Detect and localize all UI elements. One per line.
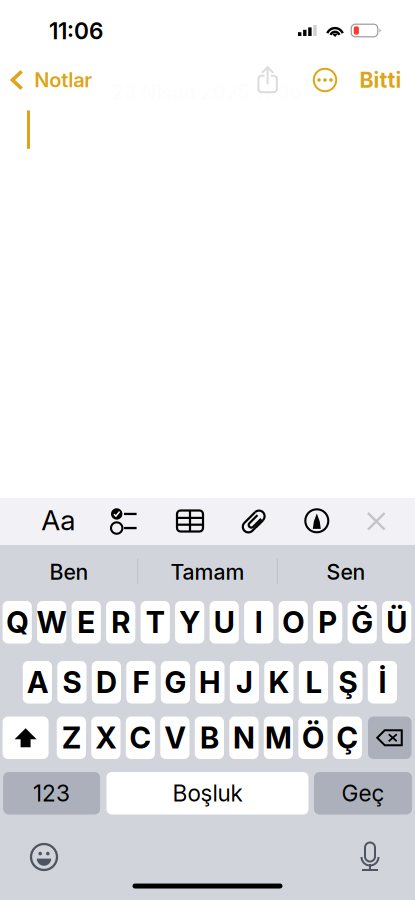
staticText: I [255, 604, 263, 640]
button[interactable]: Boşluk [106, 772, 308, 814]
button[interactable]: Geç [314, 772, 412, 814]
staticText: D [96, 664, 117, 700]
button[interactable]: C [126, 716, 155, 759]
button[interactable]: Notlar [1, 59, 102, 101]
button[interactable]: Text format [35, 498, 81, 542]
staticText: Ç [336, 720, 358, 755]
button[interactable]: U [210, 601, 239, 643]
button[interactable]: K [264, 661, 293, 703]
staticText: O [282, 604, 304, 640]
button[interactable]: More options [303, 58, 347, 102]
staticText: C [129, 720, 151, 755]
staticText: N [233, 720, 255, 755]
button[interactable]: 123 [3, 772, 100, 814]
staticText: Geç [341, 779, 384, 807]
staticText: E [77, 604, 95, 640]
button[interactable]: E [72, 601, 101, 643]
button[interactable]: Ğ [348, 601, 377, 643]
staticText: M [265, 720, 292, 755]
button[interactable]: S [57, 661, 86, 703]
staticText: Aa [41, 503, 75, 537]
staticText: 11:06 [49, 17, 103, 45]
staticText: Ü [386, 604, 407, 640]
staticText: A [27, 664, 48, 700]
button[interactable]: Attach [233, 499, 277, 543]
button[interactable]: Ü [382, 601, 411, 643]
staticText: Bitti [359, 67, 401, 93]
staticText: X [95, 720, 116, 755]
button[interactable]: Ş [333, 661, 362, 703]
button[interactable]: Ben [2, 549, 136, 595]
staticText: W [37, 604, 67, 640]
staticText: K [268, 664, 289, 700]
staticText: P [318, 604, 337, 640]
button[interactable]: O [279, 601, 308, 643]
button[interactable]: A [23, 661, 52, 703]
staticText: F [132, 664, 149, 700]
button[interactable]: Table [168, 499, 212, 543]
staticText: Ben [49, 559, 88, 585]
staticText: Ö [302, 720, 324, 755]
staticText: 23 Nisan 2025 11:06 [111, 80, 302, 104]
staticText: V [164, 720, 185, 755]
staticText: H [199, 664, 221, 700]
button[interactable]: I [244, 601, 273, 643]
button[interactable]: F [126, 661, 155, 703]
staticText: J [236, 664, 253, 700]
button[interactable]: N [229, 716, 258, 759]
button[interactable]: R [106, 601, 135, 643]
staticText: İ [378, 664, 386, 700]
button[interactable]: Dictate [348, 835, 392, 879]
button[interactable]: J [230, 661, 259, 703]
staticText: Tamam [170, 559, 244, 585]
staticText: S [62, 664, 81, 700]
staticText: Sen [326, 559, 365, 585]
button[interactable]: Close keyboard [354, 499, 398, 543]
staticText: 123 [33, 779, 70, 807]
staticText: B [200, 720, 219, 755]
button[interactable]: Q [3, 601, 32, 643]
staticText: T [146, 604, 165, 640]
staticText: Ş [338, 664, 357, 700]
button[interactable]: M [264, 716, 293, 759]
button[interactable]: X [91, 716, 120, 759]
button[interactable]: Markup [295, 499, 339, 543]
button[interactable]: B [195, 716, 224, 759]
button[interactable]: Checklist [102, 499, 146, 543]
button[interactable]: Z [57, 716, 86, 759]
button[interactable]: D [92, 661, 121, 703]
button[interactable]: W [37, 601, 66, 643]
staticText: G [164, 664, 186, 700]
button[interactable]: Sen [279, 549, 413, 595]
button[interactable]: G [161, 661, 190, 703]
button[interactable]: Shift [3, 716, 49, 759]
button[interactable]: Delete [368, 716, 411, 759]
button[interactable]: V [160, 716, 189, 759]
staticText: R [111, 604, 130, 640]
staticText: U [214, 604, 235, 640]
button[interactable]: P [313, 601, 342, 643]
button[interactable]: Ö [298, 716, 327, 759]
button[interactable]: Tamam [140, 549, 274, 595]
button[interactable]: Y [175, 601, 204, 643]
button[interactable]: Share [246, 56, 290, 100]
staticText: Y [179, 604, 200, 640]
staticText: Q [6, 604, 28, 640]
staticText: Ğ [351, 604, 373, 640]
button[interactable]: T [141, 601, 170, 643]
button[interactable]: İ [368, 661, 397, 703]
button[interactable]: L [299, 661, 328, 703]
button[interactable]: H [195, 661, 224, 703]
button[interactable]: Ç [333, 716, 362, 759]
staticText: Boşluk [172, 779, 242, 807]
staticText: L [305, 664, 321, 700]
staticText: Z [62, 720, 81, 755]
button[interactable]: Emoji [22, 835, 66, 879]
staticText: Notlar [34, 68, 92, 92]
button[interactable]: Bitti [351, 59, 409, 101]
